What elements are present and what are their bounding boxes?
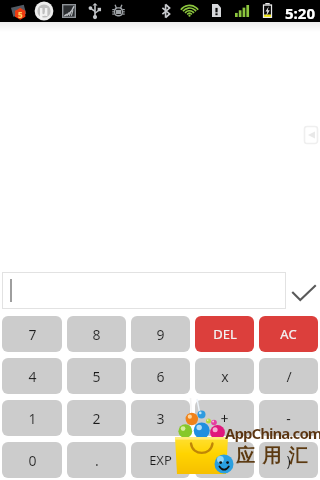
staticText: / [286,367,292,386]
button[interactable] [2,272,286,309]
staticText: ( [222,451,227,470]
staticText: 2 [92,409,101,428]
staticText: DEL [213,325,237,343]
button[interactable]: ( [195,442,254,478]
button[interactable]: Open history panel [304,126,318,144]
button[interactable]: / [259,358,318,394]
button[interactable]: 1 [2,400,62,436]
staticText: . [95,451,99,470]
staticText: 3 [156,409,165,428]
button[interactable]: . [67,442,126,478]
staticText: + [220,409,229,428]
button[interactable]: 0 [2,442,62,478]
button[interactable]: 6 [131,358,190,394]
staticText: 9 [156,325,165,344]
button[interactable]: ) [259,442,318,478]
button[interactable]: AC [259,316,318,352]
staticText: 4 [28,367,37,386]
button[interactable]: + [195,400,254,436]
button[interactable]: EXP [131,442,190,478]
button[interactable]: 3 [131,400,190,436]
button[interactable]: DEL [195,316,254,352]
staticText: AC [280,325,297,343]
staticText: x [221,367,229,386]
staticText: EXP [149,451,172,469]
staticText: 8 [92,325,101,344]
button[interactable]: 9 [131,316,190,352]
staticText: 5 [18,9,23,20]
staticText: 0 [28,451,37,470]
staticText: 应用汇 [236,444,315,468]
staticText: - [286,409,291,428]
staticText: 6 [156,367,165,386]
button[interactable]: Evaluate [286,272,320,309]
button[interactable]: 4 [2,358,62,394]
staticText: 7 [28,325,37,344]
button[interactable]: 8 [67,316,126,352]
button[interactable]: 5 [67,358,126,394]
staticText: 5:20 [285,3,315,23]
button[interactable]: x [195,358,254,394]
button[interactable]: - [259,400,318,436]
staticText: µ [39,1,49,20]
staticText: 1 [28,409,37,428]
button[interactable]: 7 [2,316,62,352]
staticText: 5 [92,367,101,386]
staticText: ) [286,451,291,470]
button[interactable]: 2 [67,400,126,436]
staticText: AppChina.com [225,423,320,443]
